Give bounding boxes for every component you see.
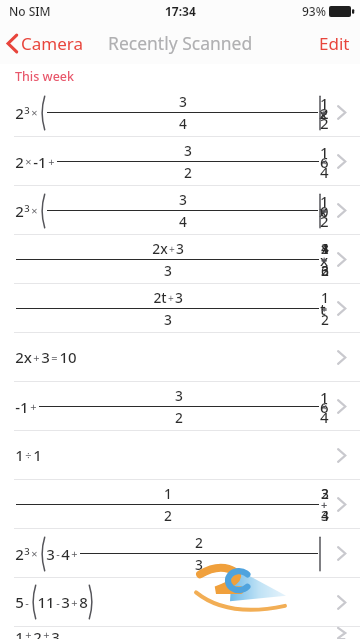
button[interactable]: 2x [0,235,360,283]
staticText: Edit [319,32,350,55]
button[interactable]: 2x [0,333,360,381]
button[interactable]: 2 [0,137,360,185]
staticText: 3 [164,261,172,280]
staticText: 4 [179,114,187,133]
staticText: 2 [15,103,24,123]
staticText: 3 [175,386,183,405]
staticText: + [48,154,55,169]
staticText: 3 [176,239,184,258]
staticText: 3 [164,310,172,329]
button[interactable]: 2t [0,284,360,332]
staticText: 11 [37,592,55,612]
staticText: 3 [195,555,203,574]
staticText: 3 [179,92,187,111]
staticText: 93% [302,3,326,19]
staticText: 3 [46,544,55,564]
button[interactable]: 2 [0,186,360,234]
staticText: This week [15,68,74,85]
staticText: 3 [41,347,50,367]
staticText: 2 [33,627,42,639]
button[interactable]: 2 [0,529,360,577]
staticText: + [71,546,78,561]
staticText: 3 [24,202,30,215]
staticText: 2 [164,506,172,525]
staticText: + [168,291,174,305]
staticText: + [43,627,50,639]
staticText: No SIM [9,3,51,19]
staticText: Recently Scanned [108,31,253,55]
staticText: 3 [24,104,30,117]
button[interactable]: Edit [309,27,360,60]
button[interactable]: 5 [0,578,360,626]
staticText: ÷ [25,448,32,463]
button[interactable]: 1 [0,627,360,639]
staticText: 2 [195,533,203,552]
button[interactable]: 2 [0,88,360,136]
staticText: 1 [15,445,24,465]
staticText: + [71,595,78,610]
staticText: 3 [61,592,70,612]
staticText: 1 [164,484,172,503]
staticText: 3 [184,141,192,160]
staticText: 3 [24,545,30,558]
button[interactable]: 1 [0,480,360,528]
button[interactable]: Camera [0,28,91,59]
staticText: - [56,595,60,610]
staticText: + [33,350,40,365]
staticText: 2 [15,152,24,172]
staticText: 3 [51,627,60,639]
staticText: + [169,242,175,256]
staticText: 1 [15,627,24,639]
staticText: 2 [175,408,183,427]
staticText: 2 [184,163,192,182]
staticText: × [31,105,38,120]
button[interactable]: 1 [0,431,360,479]
staticText: 10 [59,347,77,367]
staticText: - [25,595,29,610]
staticText: 17:34 [165,3,196,19]
staticText: 5 [15,592,24,612]
staticText: 3 [175,288,183,307]
staticText: -1 [33,152,47,172]
staticText: = [51,350,58,365]
staticText: 4 [61,544,70,564]
staticText: 4 [179,212,187,231]
staticText: + [25,627,32,639]
staticText: + [30,399,37,414]
staticText: 2 [15,544,24,564]
staticText: 8 [79,592,88,612]
staticText: 2x [152,239,168,258]
staticText: 3 [179,190,187,209]
staticText: × [25,154,32,169]
staticText: -1 [15,397,29,417]
staticText: × [31,546,38,561]
button[interactable]: -1 [0,382,360,430]
staticText: Camera [21,32,83,55]
staticText: 1 [33,445,42,465]
staticText: 2x [15,347,32,367]
staticText: 2 [15,201,24,221]
staticText: - [56,546,60,561]
staticText: × [31,203,38,218]
staticText: 2t [153,288,167,307]
